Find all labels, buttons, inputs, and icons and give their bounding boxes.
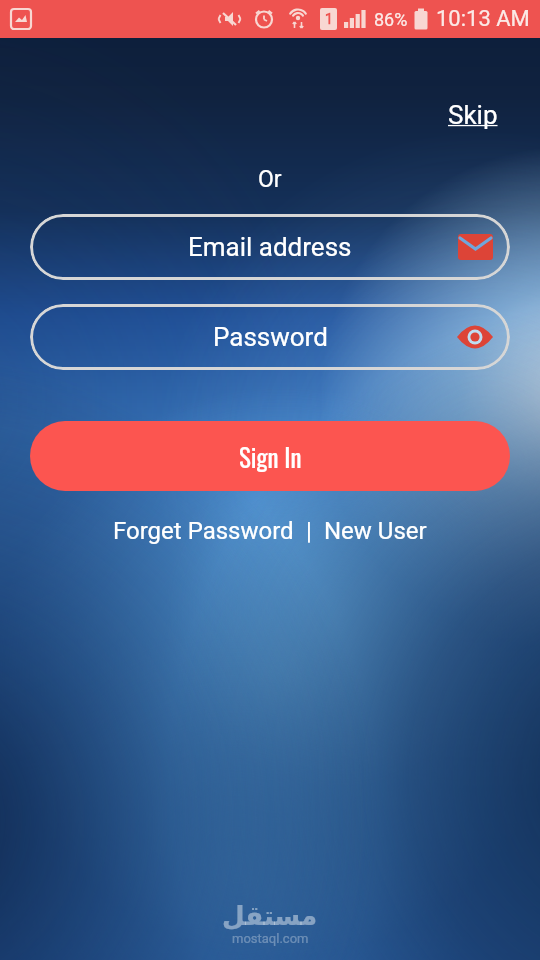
- staticText: 1: [325, 11, 333, 27]
- staticText: مستقل: [222, 901, 318, 931]
- button[interactable]: Password: [30, 304, 510, 370]
- button[interactable]: Skip: [448, 100, 498, 130]
- staticText: |: [294, 517, 324, 545]
- staticText: Sign In: [239, 438, 302, 475]
- button[interactable]: Sign In: [30, 421, 510, 491]
- staticText: Email address: [188, 232, 352, 262]
- button[interactable]: New User: [324, 517, 427, 545]
- button[interactable]: Forget Password: [113, 517, 294, 545]
- staticText: 86%: [374, 9, 408, 30]
- button[interactable]: Email address: [30, 214, 510, 280]
- staticText: Password: [213, 322, 328, 352]
- staticText: Or: [258, 166, 282, 193]
- staticText: 10:13 AM: [436, 6, 530, 32]
- staticText: mostaql.com: [232, 931, 309, 946]
